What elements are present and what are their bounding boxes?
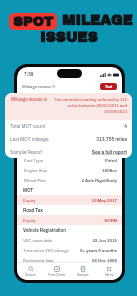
- staticText: Petrol: [104, 158, 117, 163]
- button[interactable]: V5C issue date: [17, 235, 122, 245]
- staticText: Time since V5C change: [23, 248, 69, 253]
- button[interactable]: Mileage issues: [5, 93, 132, 120]
- button[interactable]: Total MOT count: [5, 120, 132, 133]
- staticText: Menu: [105, 273, 114, 277]
- staticText: See a full report: [91, 150, 127, 155]
- button[interactable]: Registered date: [17, 255, 122, 265]
- staticText: Sample Report: [10, 150, 42, 155]
- button[interactable]: Sample: [70, 263, 96, 280]
- staticText: Search: [25, 273, 36, 277]
- staticText: Wheel Plan: [24, 178, 47, 183]
- staticText: The odometer reading reduced by 112 mile…: [53, 97, 127, 114]
- staticText: 02 Jun 2015: [92, 238, 117, 243]
- staticText: Fuel Type: [24, 158, 44, 163]
- button[interactable]: Expiry: [17, 215, 122, 225]
- staticText: 06 Dec 1989: [92, 258, 117, 263]
- staticText: SORN: [104, 218, 117, 223]
- staticText: 1868cc: [102, 168, 117, 173]
- staticText: 16 May 2017: [91, 198, 117, 203]
- button[interactable]: Engine Size: [17, 165, 122, 175]
- staticText: Sample: [77, 273, 89, 277]
- staticText: Mileage issues: [11, 97, 43, 102]
- staticText: Expiry: [23, 218, 36, 223]
- button[interactable]: Last MOT mileage: [5, 133, 132, 146]
- staticText: MILEAGE: [62, 13, 133, 28]
- staticText: 9+ years 6 months: [80, 248, 117, 253]
- staticText: MOT: [23, 188, 34, 193]
- staticText: Registered date: [23, 258, 54, 263]
- button[interactable]: Fuel Type: [17, 155, 122, 165]
- button[interactable]: Expiry: [17, 195, 122, 205]
- staticText: Engine Size: [24, 168, 48, 173]
- staticText: Vehicle Registration: [23, 228, 67, 233]
- staticText: Mileage issues: [22, 84, 51, 89]
- staticText: ISSUES: [40, 30, 98, 45]
- staticText: Last MOT mileage: [10, 137, 49, 142]
- staticText: 2 Axle Rigid Body: [81, 178, 117, 183]
- staticText: Test: [105, 85, 113, 89]
- staticText: 313,755 miles: [96, 137, 127, 142]
- button[interactable]: Test: [100, 83, 117, 90]
- button[interactable]: Time since V5C change: [17, 245, 122, 255]
- staticText: Total MOT count: [10, 124, 46, 129]
- button[interactable]: Sample Report: [5, 146, 132, 158]
- button[interactable]: Free Check: [44, 263, 70, 280]
- staticText: 7:59: [24, 72, 34, 77]
- staticText: Road Tax: [23, 208, 43, 213]
- staticText: Free Check: [48, 273, 66, 277]
- button[interactable]: Search: [17, 263, 44, 280]
- staticText: 4: [124, 124, 127, 129]
- button[interactable]: Menu: [96, 263, 122, 280]
- button[interactable]: Wheel Plan: [17, 175, 122, 185]
- staticText: Expiry: [23, 198, 36, 203]
- staticText: V5C issue date: [23, 238, 53, 243]
- staticText: SPOT: [13, 14, 54, 29]
